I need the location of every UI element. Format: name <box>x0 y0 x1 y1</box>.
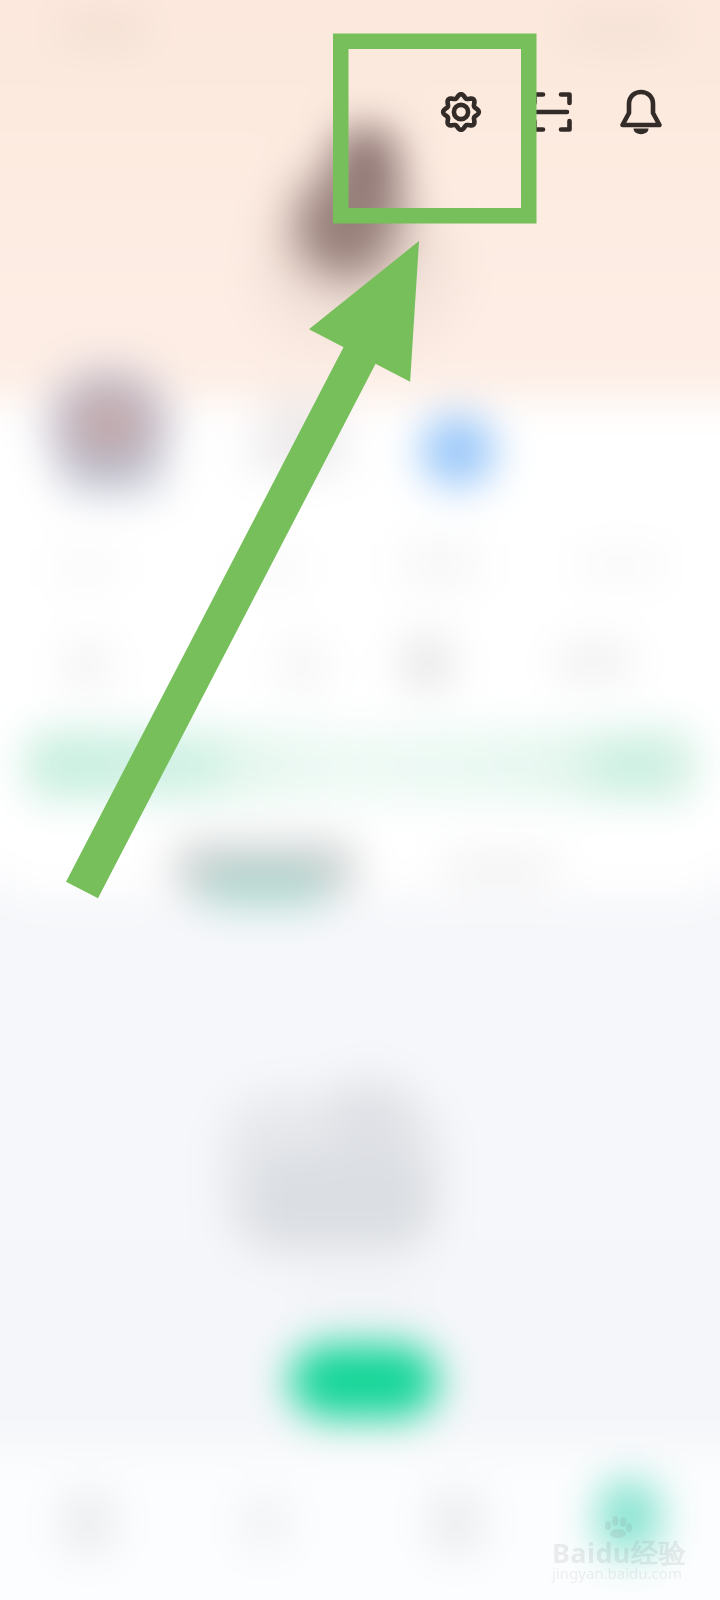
button[interactable]: Notifications <box>605 74 677 146</box>
button[interactable]: Settings <box>425 76 497 148</box>
button[interactable]: Scan code <box>516 76 588 148</box>
staticText: jingyan.baidu.com <box>552 1563 682 1583</box>
staticText: Baidu经验 <box>552 1534 686 1571</box>
